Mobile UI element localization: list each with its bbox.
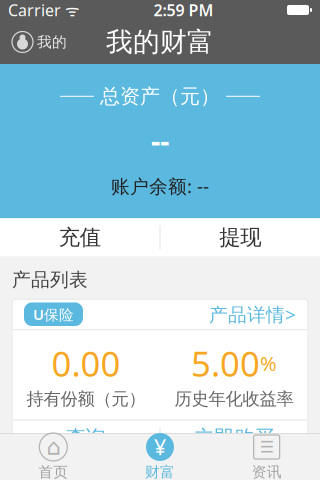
button[interactable]: ⌂ — [0, 434, 107, 480]
staticText: 我的 — [37, 33, 67, 51]
staticText: ¥ — [154, 433, 166, 461]
button[interactable]: 我的 — [6, 27, 73, 56]
staticText: 提现 — [219, 224, 261, 250]
staticText: % — [260, 350, 277, 377]
staticText: -- — [151, 121, 169, 160]
staticText: 首页 — [38, 463, 68, 480]
button[interactable]: ☰ — [213, 434, 320, 480]
button[interactable]: 产品详情> — [209, 467, 296, 480]
button[interactable]: 提现 — [160, 218, 320, 256]
staticText: 总资产（元） — [100, 84, 220, 109]
staticText: 历史年化收益率 — [174, 388, 293, 410]
button[interactable]: 查询 — [12, 421, 159, 455]
staticText: U保险 — [33, 304, 74, 324]
staticText: 立即购买 — [194, 425, 274, 450]
staticText: 产品详情> — [209, 467, 296, 480]
staticText: U宝 — [33, 470, 59, 480]
staticText: 资讯 — [252, 463, 282, 480]
staticText: ⌂ — [46, 434, 60, 460]
staticText: 查询 — [66, 425, 106, 450]
staticText: 0.00 — [51, 340, 120, 386]
staticText: ☰ — [260, 438, 274, 456]
staticText: 充值 — [59, 224, 101, 250]
staticText: 产品列表 — [12, 268, 88, 291]
button[interactable]: 产品详情> — [209, 302, 296, 327]
staticText: 持有份额（元） — [26, 388, 145, 410]
staticText: 5.00 — [191, 340, 260, 386]
staticText: 2:59 PM — [153, 0, 213, 21]
staticText: 我的财富 — [106, 26, 214, 58]
button[interactable]: 充值 — [0, 218, 159, 256]
button[interactable]: ¥ — [107, 434, 213, 480]
button[interactable]: 立即购买 — [160, 421, 308, 455]
staticText: 产品详情> — [209, 302, 296, 327]
staticText: 账户余额: -- — [111, 173, 209, 198]
staticText: Carrier — [8, 0, 61, 21]
staticText: ᯤ — [61, 0, 80, 21]
staticText: 财富 — [145, 463, 175, 480]
